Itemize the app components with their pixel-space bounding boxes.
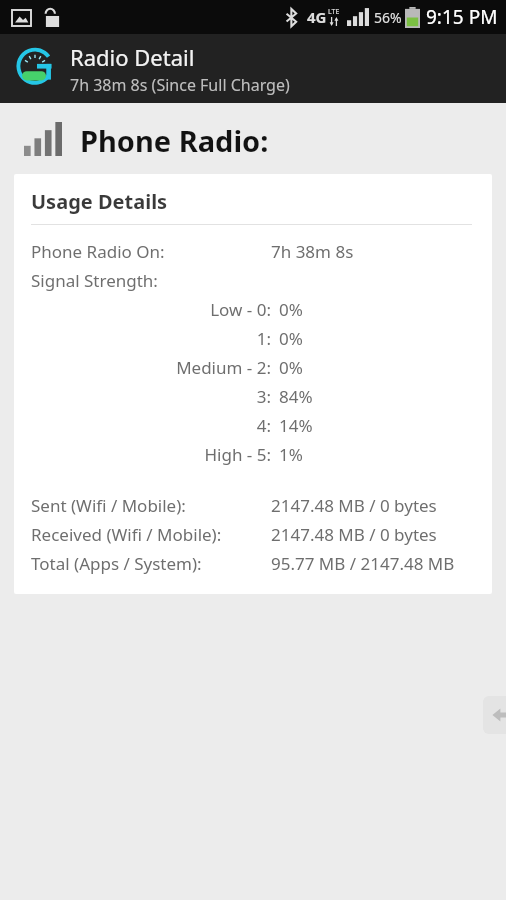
staticText: 1% [279, 443, 303, 466]
staticText: 0% [279, 356, 303, 379]
staticText: 3: [256, 385, 271, 408]
staticText: 84% [279, 385, 313, 408]
staticText: 56% [374, 8, 402, 27]
staticText: Signal Strength: [31, 269, 158, 292]
staticText: 7h 38m 8s [271, 240, 354, 263]
staticText: Low - 0: [210, 298, 271, 321]
staticText: 1: [256, 327, 271, 350]
staticText: Medium - 2: [176, 356, 271, 379]
staticText: High - 5: [204, 443, 271, 466]
staticText: 2147.48 MB / 0 bytes [271, 494, 437, 517]
staticText: 9:15 PM [426, 4, 498, 30]
staticText: 7h 38m 8s (Since Full Charge) [70, 74, 290, 96]
staticText: 4: [256, 414, 271, 437]
staticText: 4G [307, 7, 327, 27]
staticText: 0% [279, 298, 303, 321]
staticText: Phone Radio: [80, 121, 269, 160]
button[interactable]: Usage Details [14, 174, 492, 594]
staticText: 0% [279, 327, 303, 350]
staticText: Total (Apps / System): [31, 552, 202, 575]
staticText: Usage Details [31, 188, 168, 215]
staticText: Phone Radio On: [31, 240, 165, 263]
staticText: Radio Detail [70, 42, 195, 72]
staticText: LTE [328, 7, 340, 17]
button[interactable]: Radio Detail [0, 34, 506, 103]
staticText: 2147.48 MB / 0 bytes [271, 523, 437, 546]
staticText: Sent (Wifi / Mobile): [31, 494, 186, 517]
staticText: 14% [279, 414, 313, 437]
staticText: Received (Wifi / Mobile): [31, 523, 222, 546]
button[interactable]: Back [483, 696, 506, 734]
staticText: 95.77 MB / 2147.48 MB [271, 552, 455, 575]
